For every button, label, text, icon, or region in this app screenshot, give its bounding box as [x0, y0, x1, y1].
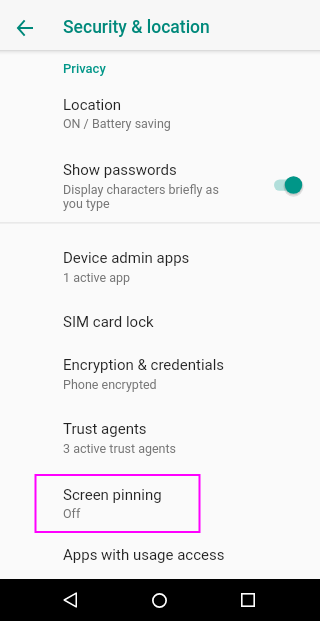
staticText: Phone encrypted	[63, 377, 157, 392]
button[interactable]: SIM card lock	[0, 300, 320, 343]
button[interactable]: Device admin apps	[0, 240, 320, 294]
staticText: 1 active app	[63, 270, 131, 285]
staticText: Off	[63, 506, 81, 521]
staticText: Screen pinning	[63, 486, 162, 504]
button[interactable]: Home	[139, 580, 179, 620]
staticText: Security & location	[63, 17, 210, 38]
staticText: ON / Battery saving	[63, 116, 171, 131]
staticText: Device admin apps	[63, 249, 190, 267]
staticText: Show passwords	[63, 161, 177, 179]
staticText: Display characters briefly as	[63, 182, 219, 197]
button[interactable]: Trust agents	[0, 411, 320, 465]
staticText: Encryption & credentials	[63, 356, 225, 374]
button[interactable]: Encryption & credentials	[0, 347, 320, 401]
staticText: you type	[63, 196, 110, 211]
button[interactable]: Apps with usage access	[0, 536, 320, 579]
button[interactable]: Show passwords	[0, 150, 320, 214]
button[interactable]: Recent apps	[228, 580, 268, 620]
staticText: Location	[63, 96, 122, 114]
staticText: Trust agents	[63, 420, 147, 438]
button[interactable]: Back	[50, 580, 90, 620]
staticText: SIM card lock	[63, 313, 154, 331]
staticText: Privacy	[63, 61, 106, 76]
button[interactable]: Show passwords	[268, 170, 312, 200]
button[interactable]: Screen pinning	[0, 474, 320, 533]
staticText: Apps with usage access	[63, 546, 225, 564]
staticText: 3 active trust agents	[63, 441, 177, 456]
button[interactable]: Navigate up	[9, 12, 41, 44]
button[interactable]: Location	[0, 86, 320, 140]
